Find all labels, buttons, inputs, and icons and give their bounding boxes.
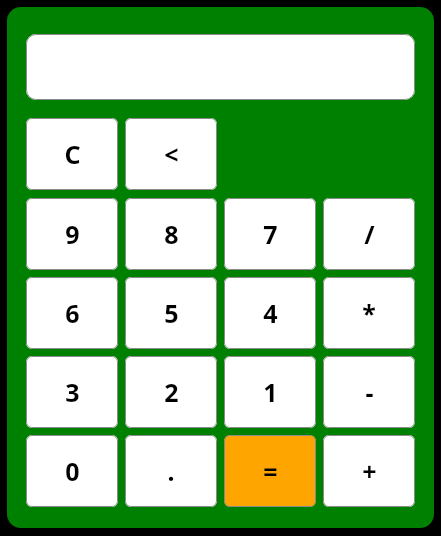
button[interactable]: 0	[26, 435, 118, 507]
staticText: -	[365, 375, 374, 409]
button[interactable]: *	[323, 277, 415, 349]
button[interactable]: 1	[224, 356, 316, 428]
staticText: =	[263, 454, 278, 488]
staticText: .	[167, 454, 175, 488]
staticText: <	[164, 137, 179, 171]
button[interactable]: =	[224, 435, 316, 507]
staticText: 9	[65, 217, 80, 251]
button[interactable]: /	[323, 198, 415, 270]
button[interactable]: 8	[125, 198, 217, 270]
button[interactable]: 7	[224, 198, 316, 270]
staticText: 4	[263, 296, 278, 330]
button[interactable]: C	[26, 118, 118, 190]
staticText: 8	[164, 217, 179, 251]
staticText: 6	[65, 296, 80, 330]
staticText: +	[362, 454, 377, 488]
staticText: C	[64, 137, 81, 171]
button[interactable]: -	[323, 356, 415, 428]
button[interactable]: +	[323, 435, 415, 507]
staticText: 3	[65, 375, 80, 409]
staticText: *	[362, 296, 376, 330]
staticText: /	[364, 217, 375, 251]
button[interactable]: 9	[26, 198, 118, 270]
staticText: 5	[164, 296, 179, 330]
button[interactable]: Display	[26, 34, 415, 100]
staticText: 0	[65, 454, 80, 488]
button[interactable]: 2	[125, 356, 217, 428]
staticText: 2	[164, 375, 179, 409]
button[interactable]: 4	[224, 277, 316, 349]
button[interactable]: <	[125, 118, 217, 190]
button[interactable]: 6	[26, 277, 118, 349]
button[interactable]: 5	[125, 277, 217, 349]
staticText: 7	[263, 217, 278, 251]
staticText: 1	[263, 375, 278, 409]
button[interactable]: .	[125, 435, 217, 507]
button[interactable]: 3	[26, 356, 118, 428]
